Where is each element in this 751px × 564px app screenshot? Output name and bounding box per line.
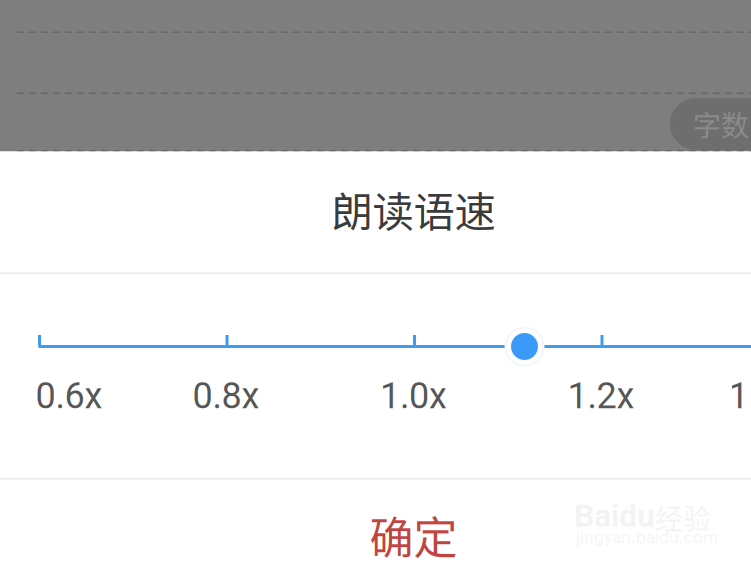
button[interactable]: 确定 [0,479,751,564]
staticText: 1.2x [567,375,634,417]
staticText: 1.4x [728,375,751,417]
staticText: 字数 [693,104,749,144]
staticText: 0.8x [192,375,259,417]
staticText: 朗读语速 [331,179,495,239]
staticText: 经验 [655,497,711,537]
button[interactable]: 字数 [670,98,751,150]
staticText: 确定 [369,503,457,564]
staticText: 1.0x [380,375,447,417]
staticText: Baidu [574,497,655,534]
button[interactable]: Playback speed [502,324,546,368]
staticText: jingyan.baidu.com [576,527,718,547]
staticText: 0.6x [35,375,102,417]
